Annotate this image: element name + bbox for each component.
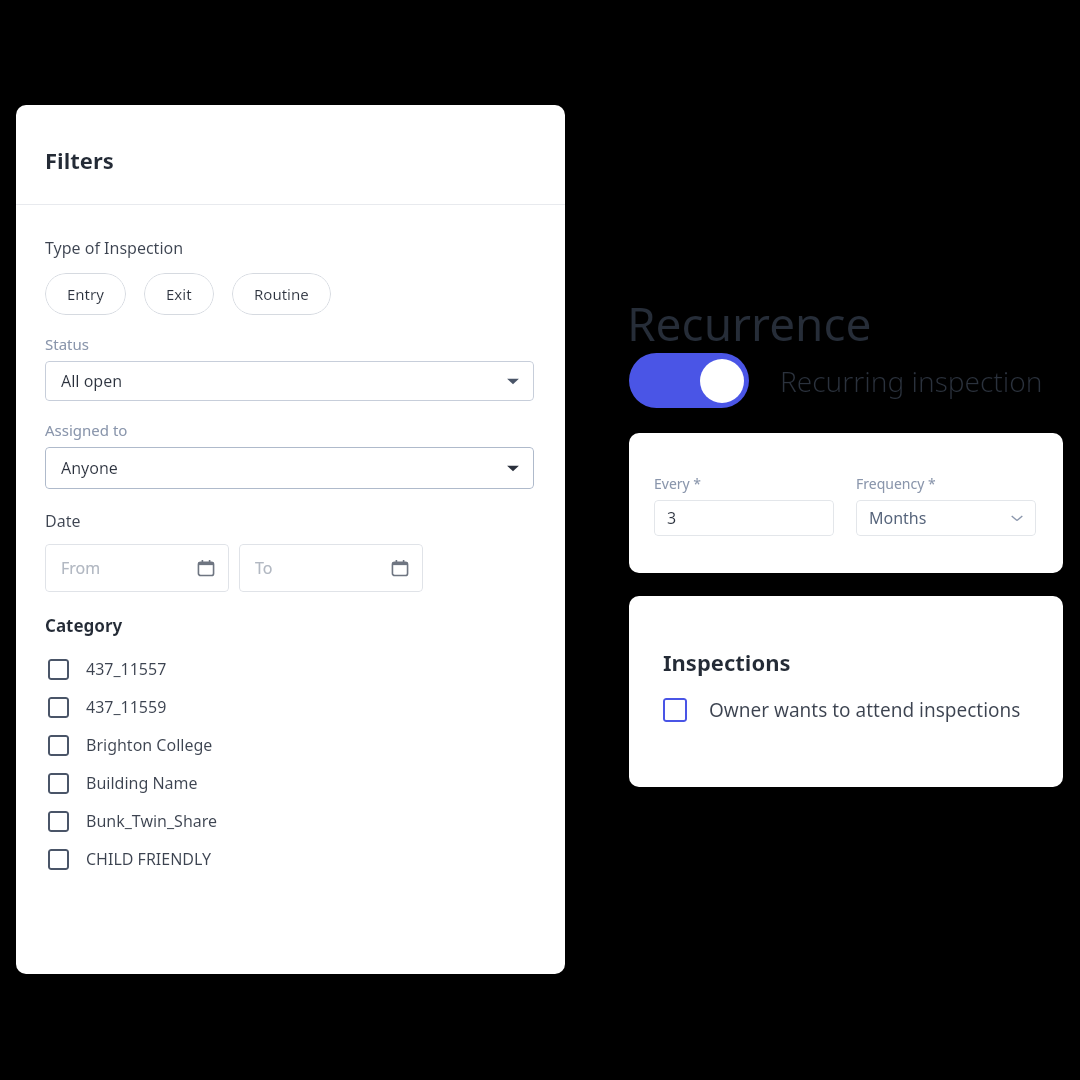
button[interactable]: Anyone (45, 447, 534, 489)
staticText: Inspections (663, 647, 791, 677)
button[interactable]: To (239, 544, 423, 592)
staticText: Every * (654, 474, 702, 493)
button[interactable]: Exit (144, 273, 214, 315)
staticText: Frequency * (856, 474, 936, 493)
staticText: Building Name (86, 772, 198, 794)
button[interactable]: Recurring inspection toggle (629, 353, 749, 408)
button[interactable]: 437_11559 (45, 688, 536, 726)
staticText: Months (869, 507, 1010, 529)
staticText: Assigned to (45, 420, 128, 440)
staticText: Date (45, 510, 81, 532)
staticText: Bunk_Twin_Share (86, 810, 218, 832)
staticText: Filters (45, 145, 114, 175)
button[interactable]: Owner wants to attend inspections (663, 697, 1021, 723)
button[interactable]: Brighton College (45, 726, 536, 764)
button[interactable]: Routine (232, 273, 331, 315)
button[interactable]: Building Name (45, 764, 536, 802)
button[interactable]: All open (45, 361, 534, 401)
button[interactable]: Bunk_Twin_Share (45, 802, 536, 840)
staticText: Brighton College (86, 734, 213, 756)
button[interactable]: Entry (45, 273, 126, 315)
staticText: Owner wants to attend inspections (709, 697, 1021, 723)
staticText: Type of Inspection (45, 237, 184, 259)
staticText: Recurrence (627, 292, 872, 355)
staticText: To (255, 557, 391, 579)
staticText: CHILD FRIENDLY (86, 848, 211, 870)
staticText: Anyone (61, 457, 506, 479)
staticText: Recurring inspection (780, 362, 1043, 400)
staticText: Routine (254, 284, 309, 304)
staticText: Exit (166, 284, 192, 304)
button[interactable]: 437_11557 (45, 650, 536, 688)
staticText: 437_11557 (86, 658, 167, 680)
staticText: Entry (67, 284, 104, 304)
button[interactable]: 3 (654, 500, 834, 536)
staticText: 437_11559 (86, 696, 167, 718)
staticText: From (61, 557, 197, 579)
button[interactable]: CHILD FRIENDLY (45, 840, 536, 878)
button[interactable]: Months (856, 500, 1036, 536)
staticText: 3 (667, 507, 677, 529)
staticText: Category (45, 614, 123, 637)
staticText: All open (61, 370, 506, 392)
staticText: Status (45, 334, 89, 354)
button[interactable]: From (45, 544, 229, 592)
